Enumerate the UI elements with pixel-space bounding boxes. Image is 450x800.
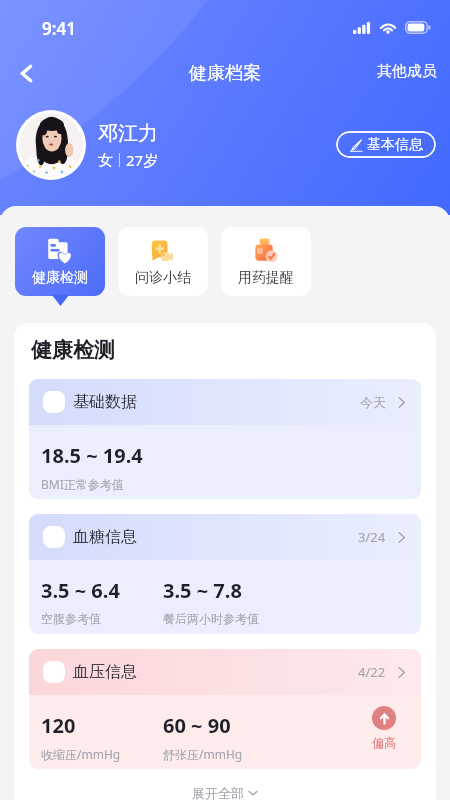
staticText: 基本信息 [367,136,423,154]
button[interactable]: 问诊小结 [118,227,208,296]
button[interactable]: 用药提醒 [221,227,311,296]
button[interactable]: 其他成员 [361,54,450,89]
staticText: 9:41 [42,17,76,40]
staticText: 用药提醒 [238,269,294,287]
button[interactable]: 血糖信息 [29,514,421,634]
staticText: 展开全部 [192,785,244,800]
staticText: 其他成员 [377,62,437,81]
staticText: 3/24 [358,528,386,546]
staticText: 今天 [360,394,386,410]
staticText: 餐后两小时参考值 [163,611,259,626]
staticText: 基础数据 [73,392,137,412]
button[interactable]: 基础数据 [29,379,421,499]
button[interactable]: 血压信息 [29,649,421,769]
staticText: 偏高 [372,735,396,750]
staticText: 健康检测 [32,269,88,287]
staticText: 18.5 ~ 19.4 [41,442,143,469]
staticText: 舒张压/mmHg [163,746,243,762]
button[interactable]: 基本信息 [336,131,436,158]
button[interactable]: 健康检测 [15,227,105,296]
staticText: 60 ~ 90 [163,712,231,739]
staticText: 120 [41,712,76,739]
staticText: 血压信息 [73,662,137,682]
staticText: 3.5 ~ 7.8 [163,577,242,604]
staticText: 女 [98,151,113,170]
button[interactable]: Back [7,54,45,92]
staticText: 27岁 [126,150,159,170]
staticText: 空腹参考值 [41,611,101,626]
staticText: 健康检测 [31,337,115,363]
staticText: BMI正常参考值 [41,476,124,492]
staticText: 4/22 [358,663,386,681]
staticText: 问诊小结 [135,269,191,287]
button[interactable]: 展开全部 [14,785,436,800]
staticText: 健康档案 [189,62,261,85]
staticText: 收缩压/mmHg [41,746,121,762]
staticText: 邓江力 [98,121,158,146]
staticText: 3.5 ~ 6.4 [41,577,120,604]
staticText: 血糖信息 [73,527,137,547]
